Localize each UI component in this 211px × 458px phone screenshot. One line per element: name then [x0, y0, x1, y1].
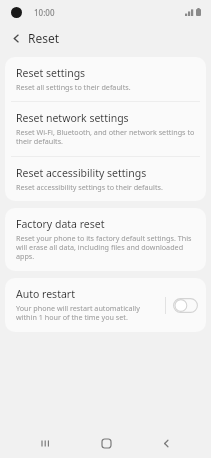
staticText: Reset settings — [16, 66, 86, 80]
button[interactable]: Factory data reset — [5, 208, 206, 271]
staticText: Reset your phone to its factory default … — [16, 233, 195, 262]
button[interactable]: Back — [151, 428, 181, 458]
staticText: Reset all settings to their defaults. — [16, 82, 131, 92]
staticText: Factory data reset — [16, 217, 105, 231]
button[interactable]: Recents — [30, 428, 60, 458]
button[interactable]: Auto restart toggle — [173, 298, 198, 313]
button[interactable]: Reset accessibility settings — [5, 157, 206, 201]
button[interactable]: Auto restart — [5, 278, 206, 332]
staticText: Your phone will restart automatically wi… — [16, 303, 159, 323]
staticText: Reset accessibility settings to their de… — [16, 182, 163, 192]
staticText: Reset accessibility settings — [16, 166, 147, 180]
button[interactable]: Back — [7, 29, 25, 47]
staticText: Reset network settings — [16, 111, 129, 125]
staticText: Reset Wi-Fi, Bluetooth, and other networ… — [16, 127, 195, 147]
button[interactable]: Reset network settings — [5, 102, 206, 156]
button[interactable]: Home — [91, 428, 121, 458]
staticText: Reset — [28, 30, 60, 46]
button[interactable]: Reset settings — [5, 57, 206, 101]
staticText: Auto restart — [16, 287, 75, 301]
staticText: 10:00 — [34, 7, 55, 18]
